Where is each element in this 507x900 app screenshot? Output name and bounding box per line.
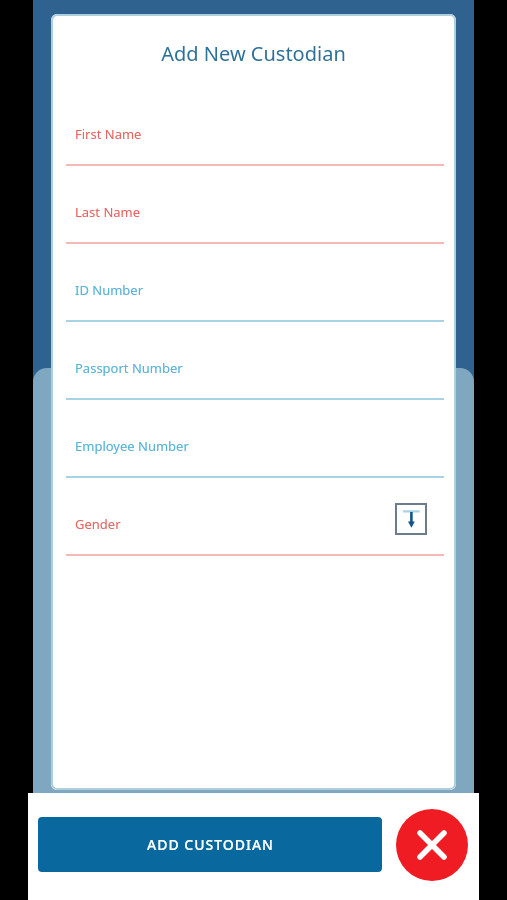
staticText: First Name — [75, 125, 142, 143]
button[interactable]: Select gender — [395, 503, 427, 535]
staticText: Passport Number — [75, 359, 183, 377]
staticText: ID Number — [75, 281, 144, 299]
button[interactable]: ID Number — [51, 260, 456, 338]
staticText: Last Name — [75, 203, 141, 221]
staticText: Gender — [75, 515, 121, 533]
button[interactable]: Employee Number — [51, 416, 456, 494]
button[interactable]: Cancel — [396, 809, 468, 881]
button[interactable]: Gender — [51, 494, 456, 572]
button[interactable]: Last Name — [51, 182, 456, 260]
button[interactable]: ADD CUSTODIAN — [38, 817, 382, 872]
staticText: Add New Custodian — [51, 40, 456, 67]
staticText: Employee Number — [75, 437, 189, 455]
button[interactable]: First Name — [51, 104, 456, 182]
staticText: ADD CUSTODIAN — [147, 835, 274, 854]
button[interactable]: Passport Number — [51, 338, 456, 416]
